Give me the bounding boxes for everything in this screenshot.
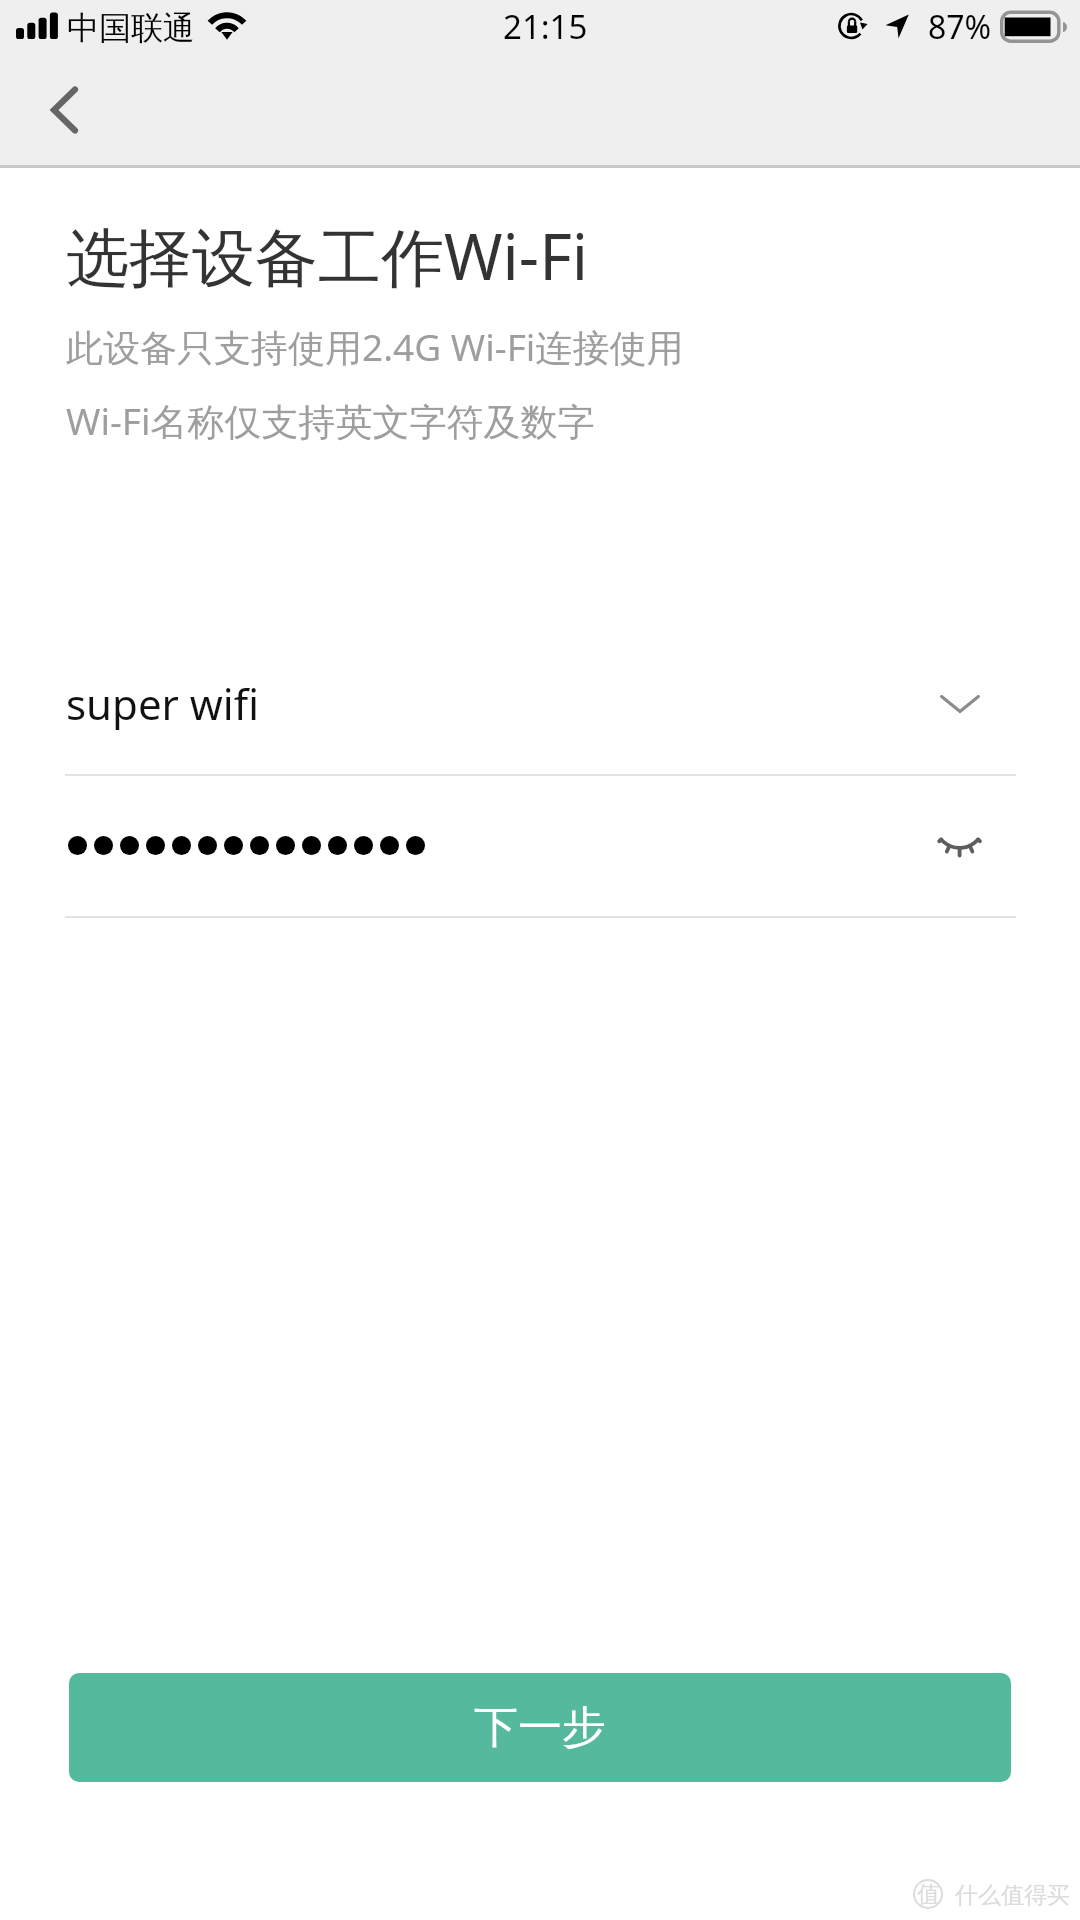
staticText: 21:15 — [503, 4, 588, 49]
staticText: Wi-Fi名称仅支持英文字符及数字 — [66, 395, 595, 446]
staticText: 中国联通 — [67, 8, 195, 48]
button[interactable]: 下一步 — [69, 1673, 1011, 1782]
staticText: 此设备只支持使用2.4G Wi-Fi连接使用 — [66, 321, 684, 372]
staticText: 什么值得买 — [955, 1881, 1070, 1910]
button[interactable]: super wifi — [65, 660, 1016, 775]
staticText: 下一步 — [474, 1700, 606, 1755]
button[interactable]: Choose Wi-Fi network — [920, 668, 1000, 742]
staticText: 选择设备工作Wi-Fi — [66, 213, 589, 299]
staticText: super wifi — [66, 675, 259, 732]
button[interactable]: Show password — [919, 807, 999, 889]
staticText: 87% — [928, 5, 992, 49]
button[interactable]: Back — [16, 69, 112, 151]
staticText: 值 — [917, 1880, 940, 1909]
